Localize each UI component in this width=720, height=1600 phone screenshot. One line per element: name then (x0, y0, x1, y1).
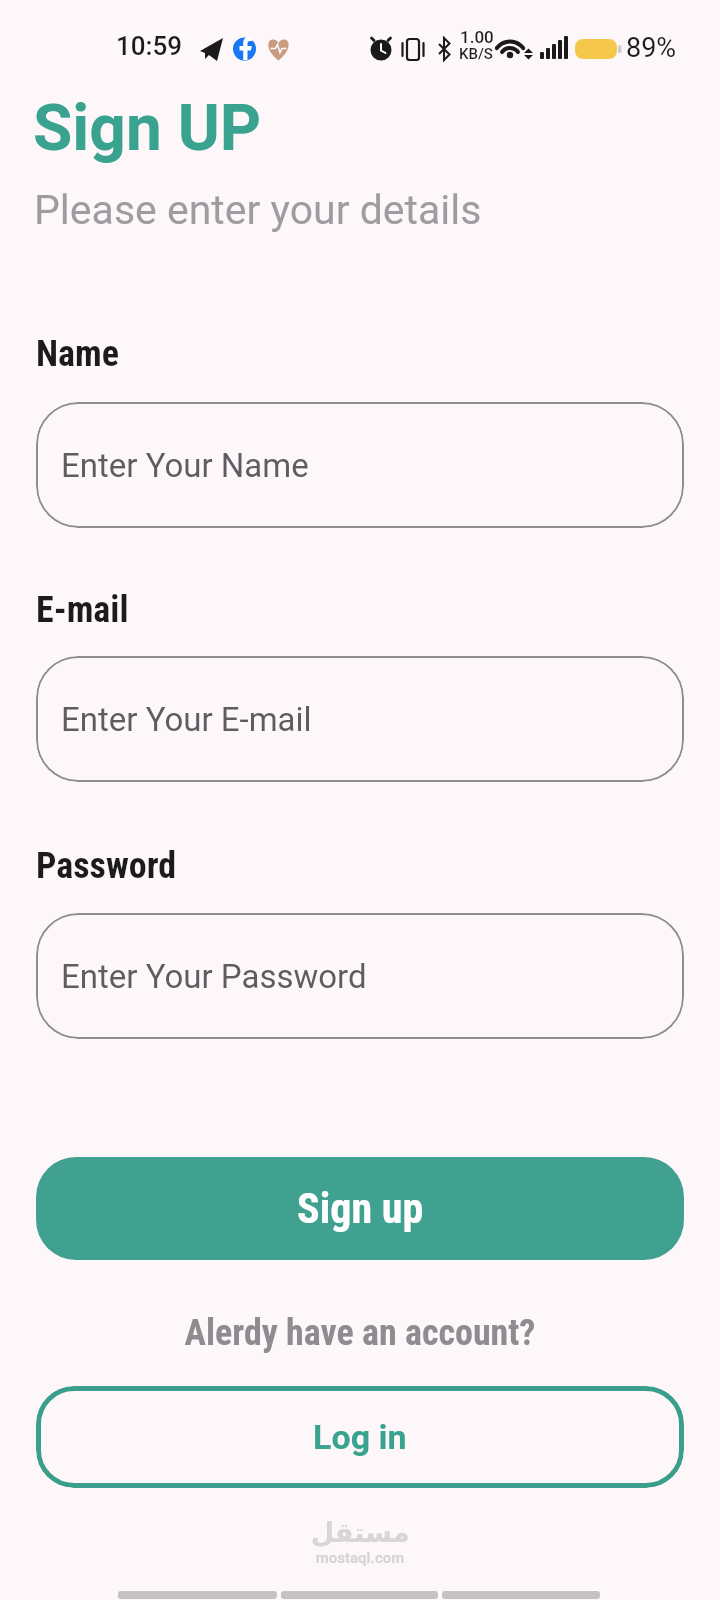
staticText: Please enter your details (34, 186, 482, 234)
staticText: Name (36, 333, 119, 375)
staticText: Log in (313, 1417, 407, 1457)
staticText: مستقل (0, 1517, 720, 1548)
button[interactable]: Log in (36, 1386, 684, 1488)
staticText: Alerdy have an account? (0, 1312, 720, 1354)
staticText: 1.00 (460, 27, 494, 47)
staticText: Sign up (297, 1184, 424, 1233)
button[interactable]: Enter Your Password (36, 913, 684, 1039)
staticText: Password (36, 845, 177, 887)
staticText: 89% (626, 32, 677, 64)
button[interactable]: Enter Your Name (36, 402, 684, 528)
staticText: Sign UP (33, 91, 262, 166)
staticText: E-mail (36, 589, 129, 631)
staticText: Enter Your Password (61, 957, 367, 996)
staticText: KB/S (459, 45, 493, 63)
staticText: 10:59 (116, 31, 183, 61)
button[interactable]: Sign up (36, 1157, 684, 1260)
staticText: Enter Your Name (61, 446, 309, 485)
staticText: Enter Your E-mail (61, 700, 312, 739)
staticText: mostaql.com (0, 1549, 720, 1567)
button[interactable]: Enter Your E-mail (36, 656, 684, 782)
